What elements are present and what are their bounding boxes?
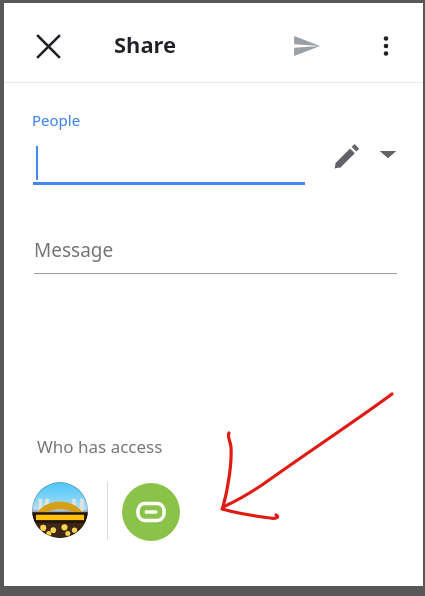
button[interactable]: Edit: [324, 133, 370, 179]
staticText: Message: [34, 237, 114, 263]
button[interactable]: Send: [283, 22, 331, 70]
button[interactable]: Anyone with the link: [122, 483, 180, 541]
staticText: Who has access: [37, 435, 163, 458]
staticText: People: [32, 110, 81, 130]
button[interactable]: Rise of Olympus app: [32, 482, 88, 538]
button[interactable]: More options: [362, 22, 410, 70]
button[interactable]: Close: [24, 22, 72, 70]
button[interactable]: Expand: [368, 134, 408, 174]
staticText: Share: [114, 29, 177, 59]
